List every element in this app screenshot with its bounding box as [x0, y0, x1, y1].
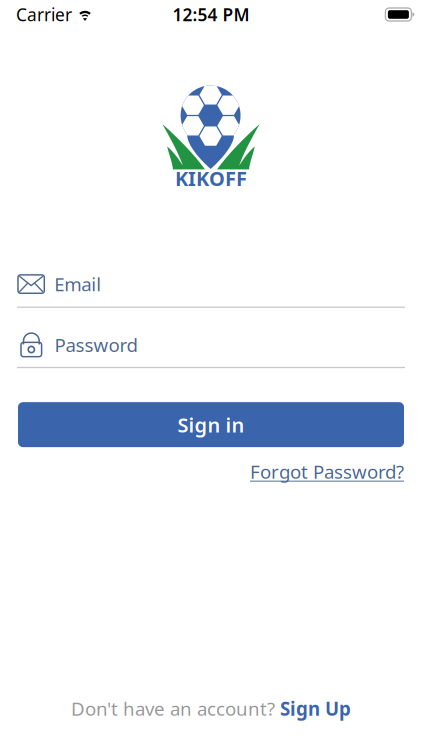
button[interactable]: Email [0, 275, 422, 308]
button[interactable]: Sign Up [280, 696, 351, 721]
staticText: Password [55, 332, 138, 357]
staticText: Forgot Password? [250, 459, 404, 484]
button[interactable]: Sign in [0, 402, 422, 447]
button[interactable]: Forgot Password? [250, 459, 404, 484]
staticText: Carrier [16, 3, 72, 26]
staticText: Don't have an account? [71, 696, 275, 721]
staticText: Email [54, 272, 101, 296]
staticText: 12:54 PM [172, 3, 249, 26]
staticText: Sign Up [280, 696, 351, 721]
staticText: Sign in [177, 411, 244, 438]
staticText: KIKOFF [175, 165, 247, 192]
button[interactable]: Password [0, 333, 422, 368]
